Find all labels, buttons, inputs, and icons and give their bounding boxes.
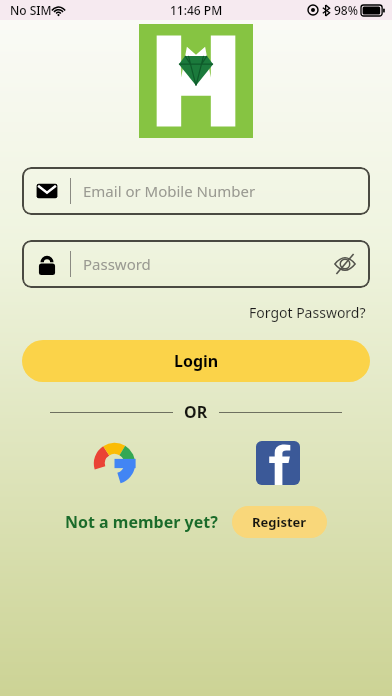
staticText: Password	[83, 254, 332, 274]
staticText: Email or Mobile Number	[83, 181, 358, 201]
button[interactable]: Sign in with Facebook	[255, 440, 301, 486]
button[interactable]: Not a member yet?	[65, 511, 218, 533]
button[interactable]: Email or Mobile Number	[22, 167, 370, 215]
staticText: OR	[184, 401, 208, 423]
button[interactable]: Show password	[332, 251, 358, 277]
button[interactable]: Password	[22, 240, 370, 288]
button[interactable]: Forgot Password?	[245, 299, 370, 326]
staticText: No SIM	[10, 2, 52, 18]
staticText: 98%	[334, 2, 358, 18]
staticText: Login	[174, 350, 219, 372]
button[interactable]: Sign in with Google	[91, 440, 137, 486]
button[interactable]: Register	[232, 506, 327, 538]
staticText: 11:46 PM	[170, 2, 223, 18]
staticText: Register	[252, 513, 307, 531]
button[interactable]: Login	[22, 340, 370, 382]
